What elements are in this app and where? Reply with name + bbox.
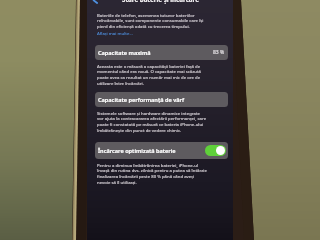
button[interactable]: Capacitate maximă [95,45,228,60]
staticText: Aceasta este o măsură a capacității bate… [97,63,207,87]
button[interactable]: Capacitate performanță de vârf [95,92,228,107]
staticText: Pentru a diminua îmbătrânirea bateriei, … [97,162,207,186]
button[interactable]: Aflați mai multe... [97,30,133,36]
staticText: Stare baterie și încărcare [122,0,199,3]
staticText: 83 % [213,49,225,56]
staticText: Bateriile de telefon, asemenea tuturor b… [97,12,207,30]
staticText: Încărcare optimizată baterie [98,147,176,155]
button[interactable]: Încărcare optimizată baterie [95,142,228,159]
button[interactable]: Back [91,0,100,5]
staticText: Capacitate maximă [98,49,151,57]
staticText: Capacitate performanță de vârf [98,96,184,104]
staticText: Sistemele software și hardware dinamice … [97,110,207,134]
